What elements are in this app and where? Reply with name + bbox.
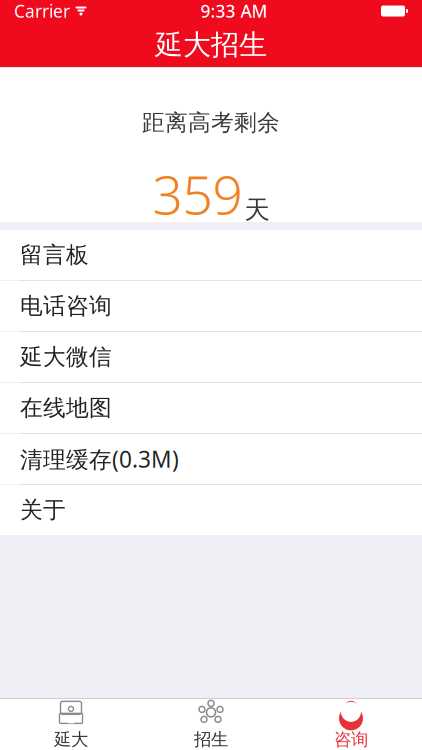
button[interactable]: 关于 bbox=[0, 484, 422, 535]
staticText: 延大 bbox=[54, 729, 88, 750]
button[interactable]: 在线地图 bbox=[0, 382, 422, 433]
button[interactable]: 延大微信 bbox=[0, 331, 422, 382]
staticText: 359 bbox=[152, 158, 242, 229]
staticText: 留言板 bbox=[20, 241, 89, 269]
staticText: 电话咨询 bbox=[20, 292, 112, 320]
button[interactable]: 留言板 bbox=[0, 230, 422, 280]
staticText: 咨询 bbox=[334, 729, 368, 750]
staticText: 延大招生 bbox=[155, 28, 267, 62]
staticText: 9:33 AM bbox=[200, 0, 267, 22]
staticText: 清理缓存(0.3M) bbox=[20, 444, 179, 474]
staticText: 延大微信 bbox=[20, 343, 112, 371]
staticText: 天 bbox=[244, 194, 269, 225]
button[interactable]: 延大 bbox=[1, 699, 141, 750]
staticText: 在线地图 bbox=[20, 394, 112, 422]
staticText: Carrier bbox=[14, 0, 70, 22]
staticText: 招生 bbox=[194, 729, 228, 750]
button[interactable]: 电话咨询 bbox=[0, 280, 422, 331]
button[interactable]: 招生 bbox=[141, 699, 281, 750]
button[interactable]: 清理缓存(0.3M) bbox=[0, 433, 422, 484]
staticText: 距离高考剩余 bbox=[142, 109, 280, 136]
staticText: 关于 bbox=[20, 496, 66, 524]
button[interactable]: 咨询 bbox=[281, 699, 421, 750]
